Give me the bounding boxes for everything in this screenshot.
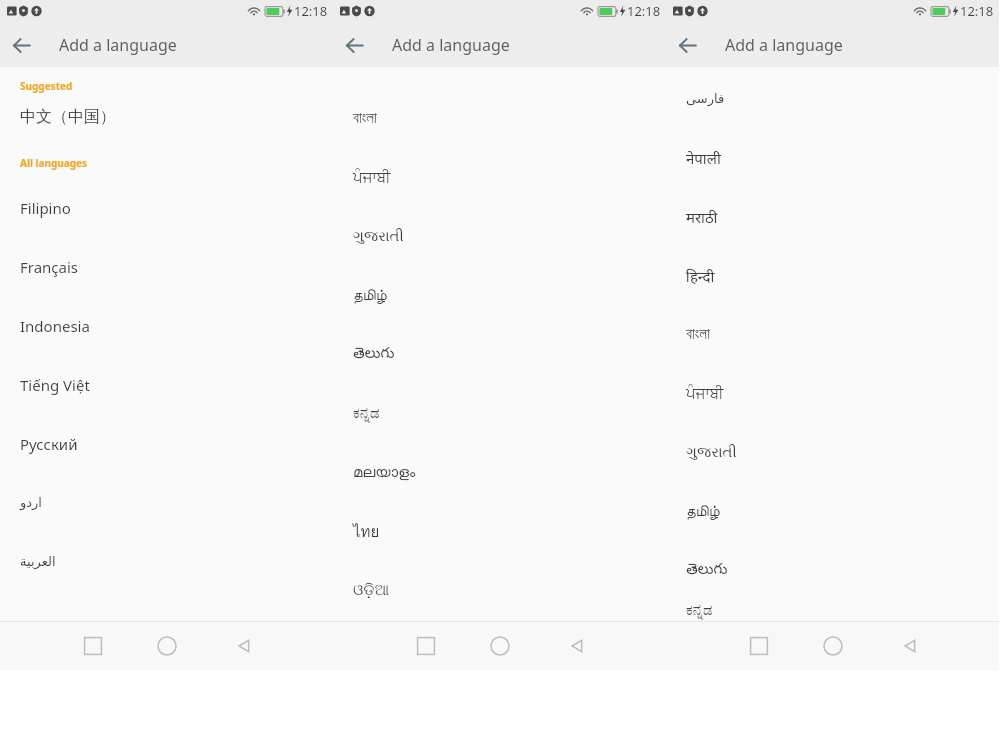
button[interactable]: Back bbox=[546, 622, 606, 670]
button[interactable]: Back bbox=[333, 24, 375, 66]
button[interactable]: اردو bbox=[0, 473, 333, 532]
button[interactable]: Back bbox=[0, 24, 42, 66]
button[interactable]: Home bbox=[137, 622, 197, 670]
staticText: தமிழ் bbox=[353, 288, 387, 303]
staticText: 12:18 bbox=[294, 2, 328, 20]
button[interactable]: Indonesia bbox=[0, 296, 333, 355]
button[interactable]: मराठी bbox=[666, 187, 999, 246]
button[interactable]: 中文（中国） bbox=[0, 93, 333, 141]
staticText: Add a language bbox=[392, 34, 510, 56]
staticText: ਪੰਜਾਬੀ bbox=[353, 170, 391, 185]
button[interactable]: Русский bbox=[0, 414, 333, 473]
staticText: ગુજરાતી bbox=[686, 445, 737, 460]
button[interactable]: ಕನ್ನಡ bbox=[666, 600, 999, 621]
staticText: اردو bbox=[20, 495, 42, 510]
button[interactable]: Back bbox=[666, 24, 708, 66]
staticText: తెలుగు bbox=[686, 561, 728, 581]
button[interactable]: ଓଡ଼ିଆ bbox=[333, 561, 666, 620]
staticText: 中文（中国） bbox=[20, 107, 116, 127]
button[interactable]: Back bbox=[213, 622, 273, 670]
staticText: ਪੰਜਾਬੀ bbox=[686, 386, 724, 401]
button[interactable]: Recent apps bbox=[396, 622, 456, 670]
staticText: 12:18 bbox=[960, 2, 994, 20]
staticText: मराठी bbox=[686, 207, 718, 227]
button[interactable]: العربية bbox=[0, 532, 333, 591]
button[interactable]: Back bbox=[879, 622, 939, 670]
button[interactable]: Tiếng Việt bbox=[0, 355, 333, 414]
staticText: हिन्दी bbox=[686, 266, 715, 286]
staticText: Filipino bbox=[20, 198, 71, 218]
button[interactable]: বাংলা bbox=[666, 305, 999, 364]
staticText: Tiếng Việt bbox=[20, 375, 90, 395]
button[interactable]: తెలుగు bbox=[333, 325, 666, 384]
button[interactable]: ગુજરાતી bbox=[666, 423, 999, 482]
staticText: বাংলা bbox=[353, 111, 377, 126]
staticText: ગુજરાતી bbox=[353, 229, 404, 244]
staticText: Indonesia bbox=[20, 316, 90, 336]
staticText: ไทย bbox=[353, 520, 380, 544]
staticText: 12:18 bbox=[627, 2, 661, 20]
button[interactable]: ਪੰਜਾਬੀ bbox=[666, 364, 999, 423]
button[interactable]: ગુજરાતી bbox=[333, 207, 666, 266]
staticText: தமிழ் bbox=[686, 504, 720, 519]
button[interactable]: മലയാളം bbox=[333, 443, 666, 502]
staticText: ಕನ್ನಡ bbox=[686, 603, 713, 618]
staticText: Suggested bbox=[20, 79, 73, 93]
staticText: বাংলা bbox=[686, 327, 710, 342]
staticText: తెలుగు bbox=[353, 345, 395, 365]
button[interactable]: Home bbox=[803, 622, 863, 670]
staticText: नेपाली bbox=[686, 148, 721, 168]
button[interactable]: Home bbox=[470, 622, 530, 670]
button[interactable]: Français bbox=[0, 237, 333, 296]
button[interactable]: ਪੰਜਾਬੀ bbox=[333, 148, 666, 207]
button[interactable]: Recent apps bbox=[63, 622, 123, 670]
staticText: العربية bbox=[20, 554, 56, 569]
staticText: All languages bbox=[20, 156, 88, 170]
button[interactable]: فارسی bbox=[666, 69, 999, 128]
staticText: Français bbox=[20, 257, 79, 277]
button[interactable]: ಕನ್ನಡ bbox=[333, 384, 666, 443]
button[interactable]: தமிழ் bbox=[666, 482, 999, 541]
button[interactable]: Filipino bbox=[0, 178, 333, 237]
button[interactable]: தமிழ் bbox=[333, 266, 666, 325]
staticText: Add a language bbox=[725, 34, 843, 56]
button[interactable]: नेपाली bbox=[666, 128, 999, 187]
staticText: Русский bbox=[20, 434, 78, 454]
button[interactable]: বাংলা bbox=[333, 89, 666, 148]
staticText: ಕನ್ನಡ bbox=[353, 406, 380, 421]
button[interactable]: తెలుగు bbox=[666, 541, 999, 600]
staticText: Add a language bbox=[59, 34, 177, 56]
button[interactable]: ไทย bbox=[333, 502, 666, 561]
staticText: മലയാളം bbox=[353, 465, 416, 480]
staticText: فارسی bbox=[686, 91, 725, 106]
button[interactable]: हिन्दी bbox=[666, 246, 999, 305]
staticText: ଓଡ଼ିଆ bbox=[353, 583, 389, 598]
button[interactable]: Recent apps bbox=[729, 622, 789, 670]
